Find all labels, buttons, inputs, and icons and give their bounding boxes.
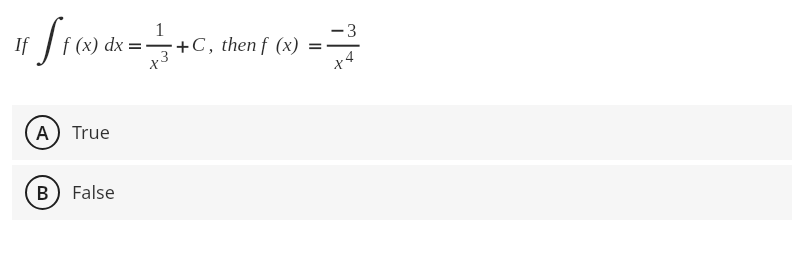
button[interactable]: A [12,105,792,160]
staticText: B [36,180,49,206]
staticText: False [72,180,115,205]
staticText: A [36,120,49,146]
button[interactable]: B [12,165,792,220]
staticText: True [72,120,110,145]
